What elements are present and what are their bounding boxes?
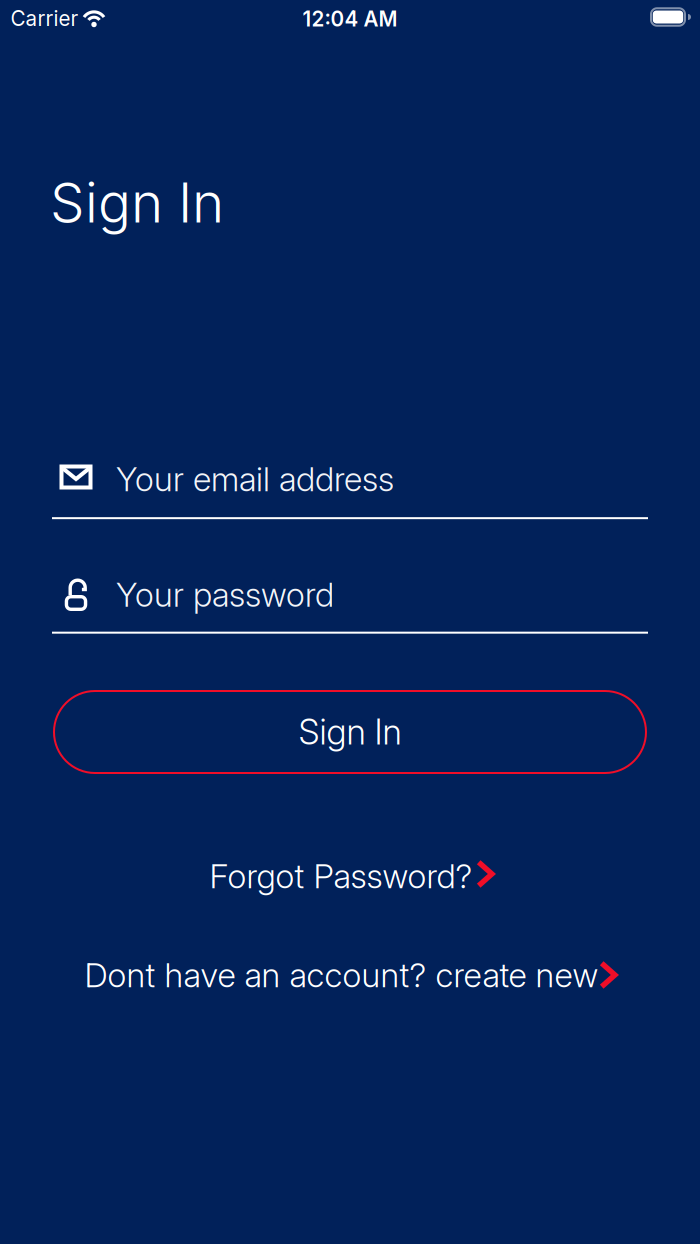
button[interactable]: Sign In	[53, 690, 647, 774]
staticText: Your password	[116, 574, 334, 615]
staticText: Carrier	[10, 6, 78, 31]
button[interactable]: Your email address	[52, 459, 648, 519]
staticText: 12:04 AM	[302, 6, 397, 31]
staticText: Your email address	[116, 459, 394, 499]
button[interactable]: Forgot Password?	[209, 856, 494, 896]
staticText: Sign In	[298, 711, 401, 753]
button[interactable]: Your password	[52, 574, 648, 634]
button[interactable]: Dont have an account? create new	[84, 955, 617, 995]
staticText: Forgot Password?	[209, 856, 472, 896]
staticText: Dont have an account? create new	[84, 955, 598, 995]
staticText: Sign In	[50, 169, 224, 235]
